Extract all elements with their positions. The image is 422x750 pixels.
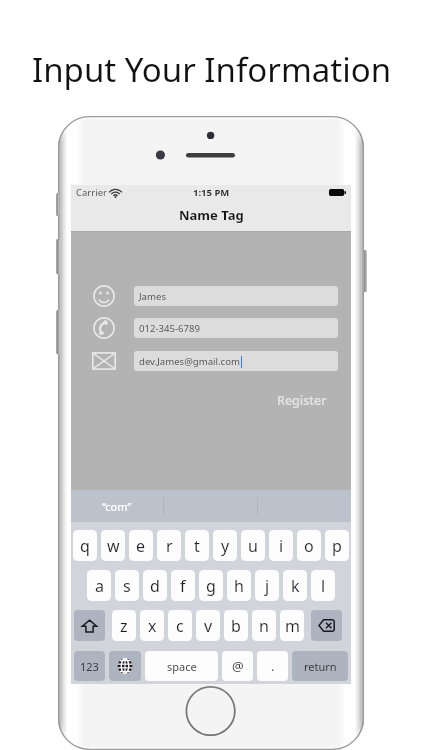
- staticText: @: [232, 657, 244, 675]
- button[interactable]: x: [140, 610, 164, 641]
- staticText: “com”: [102, 499, 132, 514]
- button[interactable]: Shift: [74, 610, 105, 641]
- staticText: q: [80, 535, 90, 557]
- staticText: x: [148, 615, 157, 637]
- button[interactable]: Change keyboard: [109, 651, 141, 681]
- staticText: j: [265, 575, 270, 597]
- button[interactable]: .: [257, 651, 288, 681]
- staticText: r: [166, 535, 173, 557]
- staticText: l: [321, 575, 326, 597]
- staticText: g: [206, 575, 216, 597]
- staticText: p: [332, 535, 342, 557]
- staticText: e: [136, 535, 146, 557]
- staticText: t: [194, 535, 200, 557]
- staticText: m: [285, 615, 300, 637]
- button[interactable]: @: [222, 651, 253, 681]
- button[interactable]: r: [157, 530, 181, 561]
- button[interactable]: y: [213, 530, 237, 561]
- staticText: z: [120, 615, 128, 637]
- staticText: 012-345-6789: [139, 322, 201, 335]
- button[interactable]: l: [311, 570, 335, 601]
- staticText: f: [180, 575, 186, 597]
- button[interactable]: return: [292, 651, 348, 681]
- other: Shift: [82, 619, 97, 633]
- button[interactable]: Register: [267, 389, 337, 412]
- staticText: n: [259, 615, 269, 637]
- staticText: .: [271, 657, 275, 675]
- button[interactable]: c: [168, 610, 192, 641]
- staticText: k: [291, 575, 300, 597]
- button[interactable]: “com”: [71, 490, 163, 522]
- button[interactable]: d: [143, 570, 167, 601]
- staticText: Name Tag: [179, 206, 244, 224]
- other: Change keyboard: [117, 658, 133, 674]
- button[interactable]: j: [255, 570, 279, 601]
- staticText: i: [279, 535, 284, 557]
- staticText: s: [123, 575, 131, 597]
- button[interactable]: dev.James@gmail.com: [134, 351, 338, 371]
- button[interactable]: t: [185, 530, 209, 561]
- button[interactable]: k: [283, 570, 307, 601]
- button[interactable]: q: [73, 530, 97, 561]
- staticText: space: [167, 659, 197, 674]
- staticText: Carrier: [76, 186, 107, 199]
- button[interactable]: Backspace: [311, 610, 342, 641]
- button[interactable]: James: [134, 286, 338, 306]
- other: Backspace: [318, 619, 335, 632]
- button[interactable]: 123: [74, 651, 105, 681]
- staticText: c: [176, 615, 184, 637]
- staticText: d: [150, 575, 160, 597]
- staticText: 123: [80, 659, 99, 674]
- button[interactable]: z: [112, 610, 136, 641]
- staticText: y: [221, 535, 230, 557]
- button[interactable]: u: [241, 530, 265, 561]
- button[interactable]: 012-345-6789: [134, 318, 338, 338]
- staticText: h: [234, 575, 244, 597]
- staticText: Register: [277, 392, 327, 409]
- staticText: v: [204, 615, 213, 637]
- button[interactable]: g: [199, 570, 223, 601]
- button[interactable]: e: [129, 530, 153, 561]
- button[interactable]: s: [115, 570, 139, 601]
- button[interactable]: h: [227, 570, 251, 601]
- staticText: James: [139, 290, 166, 303]
- button[interactable]: i: [269, 530, 293, 561]
- button[interactable]: f: [171, 570, 195, 601]
- button[interactable]: n: [252, 610, 276, 641]
- button[interactable]: p: [325, 530, 349, 561]
- button[interactable]: a: [87, 570, 111, 601]
- staticText: dev.James@gmail.com: [139, 355, 240, 368]
- staticText: w: [107, 535, 120, 557]
- staticText: Input Your Information: [32, 47, 392, 92]
- button[interactable]: o: [297, 530, 321, 561]
- button[interactable]: b: [224, 610, 248, 641]
- button[interactable]: space: [145, 651, 218, 681]
- button[interactable]: v: [196, 610, 220, 641]
- staticText: a: [95, 575, 104, 597]
- staticText: 1:15 PM: [193, 186, 230, 199]
- staticText: b: [231, 615, 241, 637]
- button[interactable]: w: [101, 530, 125, 561]
- button[interactable]: m: [280, 610, 304, 641]
- staticText: o: [304, 535, 314, 557]
- staticText: u: [248, 535, 258, 557]
- staticText: return: [304, 659, 337, 674]
